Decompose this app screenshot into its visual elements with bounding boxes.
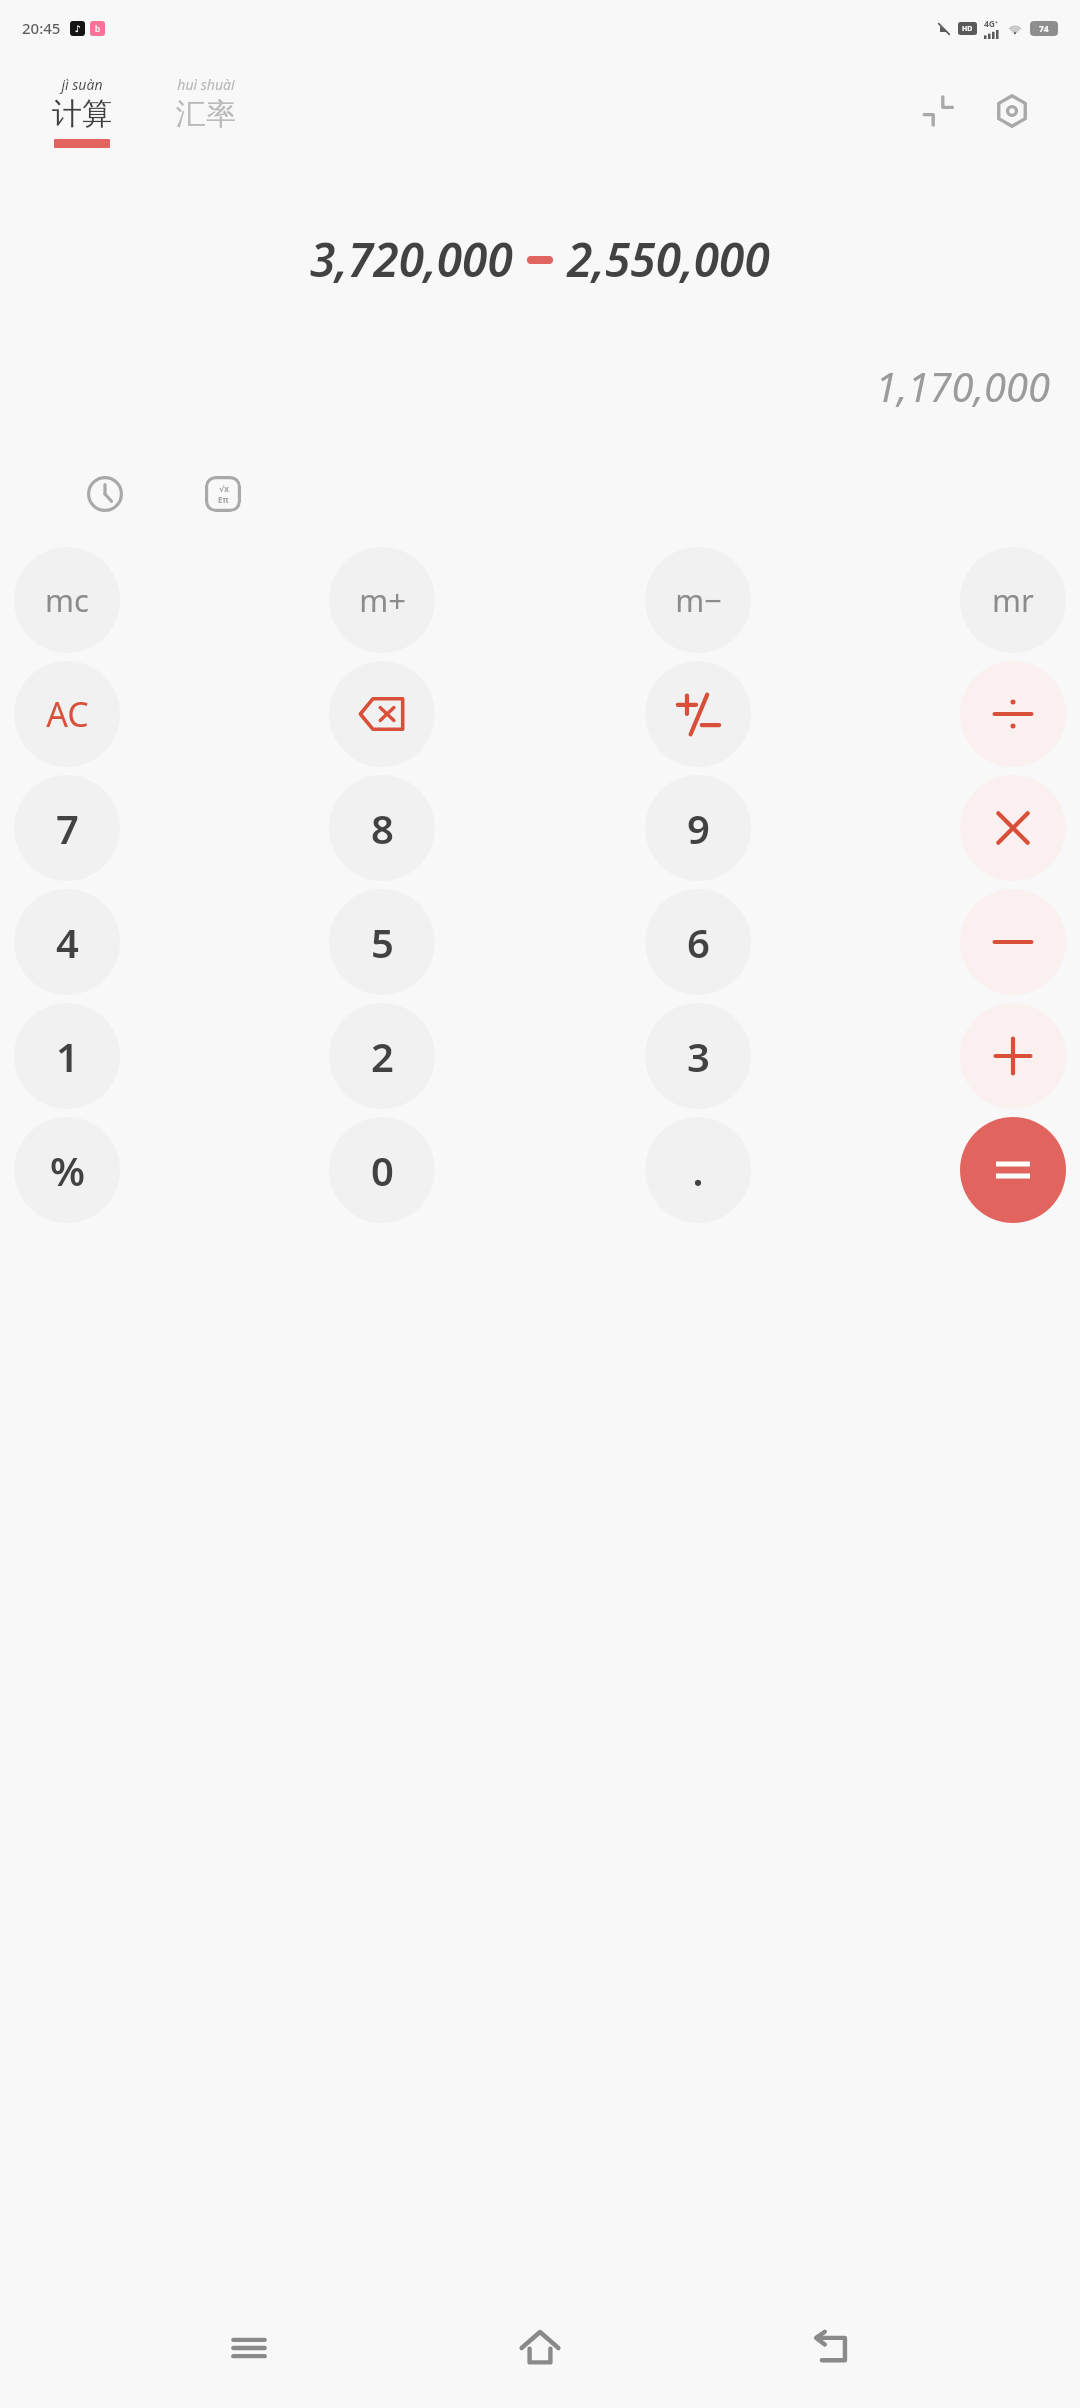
button[interactable]: mr: [960, 547, 1066, 653]
staticText: √x: [219, 483, 229, 494]
button[interactable]: Plus minus: [645, 661, 751, 767]
button[interactable]: 3: [645, 1003, 751, 1109]
staticText: mc: [45, 579, 89, 621]
staticText: m+: [359, 579, 406, 621]
button[interactable]: m−: [645, 547, 751, 653]
button[interactable]: m+: [329, 547, 435, 653]
staticText: jì suàn: [61, 75, 103, 94]
button[interactable]: Back: [789, 2305, 875, 2391]
staticText: 5: [371, 915, 394, 969]
staticText: Eπ: [218, 494, 229, 505]
button[interactable]: History: [74, 463, 136, 525]
staticText: 7: [56, 801, 79, 855]
staticText: 2,550,000: [567, 228, 770, 291]
staticText: 1,170,000: [30, 359, 1050, 413]
button[interactable]: AC: [14, 661, 120, 767]
staticText: 3: [687, 1029, 710, 1083]
button[interactable]: 4: [14, 889, 120, 995]
staticText: 1: [56, 1029, 79, 1083]
button[interactable]: 8: [329, 775, 435, 881]
button[interactable]: Scientific: [192, 463, 254, 525]
button[interactable]: 1: [14, 1003, 120, 1109]
staticText: HD: [962, 24, 973, 34]
button[interactable]: 7: [14, 775, 120, 881]
staticText: 3,720,000: [310, 228, 513, 291]
staticText: 6: [687, 915, 710, 969]
staticText: 8: [371, 801, 394, 855]
button[interactable]: Delete: [329, 661, 435, 767]
staticText: b: [95, 23, 100, 34]
staticText: huì shuài: [177, 75, 235, 94]
staticText: .: [692, 1143, 704, 1197]
staticText: 计算: [52, 95, 112, 133]
button[interactable]: 0: [329, 1117, 435, 1223]
staticText: mr: [992, 579, 1034, 621]
button[interactable]: %: [14, 1117, 120, 1223]
button[interactable]: huì shuài: [172, 75, 240, 148]
button[interactable]: jì suàn: [48, 75, 116, 148]
staticText: %: [50, 1143, 85, 1197]
button[interactable]: Home: [497, 2305, 583, 2391]
button[interactable]: Float window: [910, 83, 966, 139]
button[interactable]: Divide: [960, 661, 1066, 767]
staticText: 2: [371, 1029, 394, 1083]
button[interactable]: .: [645, 1117, 751, 1223]
button[interactable]: 9: [645, 775, 751, 881]
button[interactable]: Equals: [960, 1117, 1066, 1223]
button[interactable]: Multiply: [960, 775, 1066, 881]
staticText: 9: [687, 801, 710, 855]
button[interactable]: 2: [329, 1003, 435, 1109]
button[interactable]: mc: [14, 547, 120, 653]
staticText: 74: [1039, 23, 1049, 35]
staticText: m−: [675, 579, 722, 621]
staticText: ♪: [75, 24, 81, 34]
button[interactable]: 5: [329, 889, 435, 995]
staticText: 汇率: [176, 95, 236, 133]
staticText: 20:45: [22, 18, 61, 38]
staticText: 4G⁺: [984, 18, 999, 30]
button[interactable]: Settings: [984, 83, 1040, 139]
button[interactable]: Minus: [960, 889, 1066, 995]
button[interactable]: 6: [645, 889, 751, 995]
staticText: 0: [371, 1143, 394, 1197]
staticText: AC: [46, 691, 89, 737]
button[interactable]: Recents: [206, 2305, 292, 2391]
button[interactable]: Plus: [960, 1003, 1066, 1109]
staticText: 4: [56, 915, 79, 969]
